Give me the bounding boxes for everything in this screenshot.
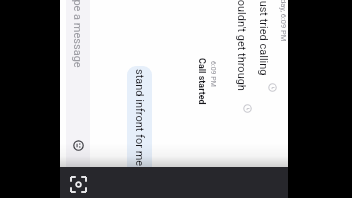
button[interactable]: Type a message — [66, 0, 90, 198]
button[interactable]: stand infront for me — [127, 66, 152, 196]
staticText: Yesterday, 6:09 PM — [279, 0, 288, 42]
staticText: stand infront for me — [133, 69, 146, 167]
staticText: Type a message — [71, 0, 84, 68]
staticText: Call started — [196, 58, 207, 105]
button[interactable]: Screenshot — [67, 173, 89, 195]
staticText: just tried calling — [257, 0, 270, 76]
staticText: couldn't get through — [235, 0, 248, 91]
staticText: 6:09 PM — [209, 61, 217, 87]
